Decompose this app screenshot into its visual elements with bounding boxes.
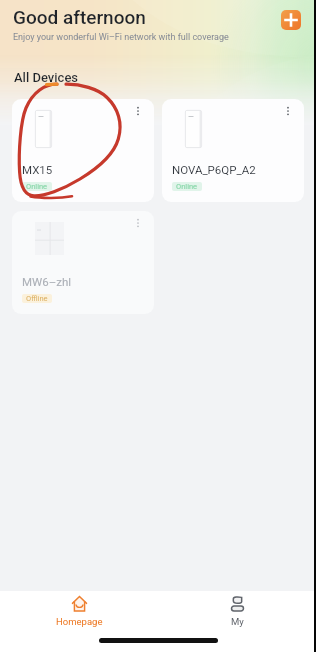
button[interactable]: More options bbox=[162, 99, 304, 202]
staticText: Online bbox=[26, 182, 48, 191]
staticText: All Devices bbox=[14, 70, 79, 85]
button[interactable]: More options bbox=[130, 215, 146, 231]
staticText: Homepage bbox=[56, 616, 103, 627]
staticText: Enjoy your wonderful Wi–Fi network with … bbox=[13, 32, 229, 43]
staticText: Online bbox=[176, 182, 198, 191]
staticText: NOVA_P6QP_A2 bbox=[172, 163, 256, 176]
button[interactable]: Add device bbox=[281, 10, 301, 30]
button[interactable]: My bbox=[158, 596, 316, 627]
staticText: Offline bbox=[26, 294, 48, 303]
staticText: My bbox=[231, 616, 244, 627]
button[interactable]: Homepage bbox=[0, 596, 158, 627]
button[interactable]: More options bbox=[130, 103, 146, 119]
button[interactable]: More options bbox=[12, 99, 154, 202]
staticText: MX15 bbox=[22, 163, 53, 176]
button[interactable]: More options bbox=[280, 103, 296, 119]
button[interactable]: More options bbox=[12, 211, 154, 314]
staticText: MW6–zhl bbox=[22, 275, 72, 288]
staticText: Good afternoon bbox=[13, 6, 146, 28]
